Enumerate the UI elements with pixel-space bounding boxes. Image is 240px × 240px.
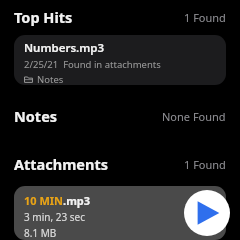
- staticText: 3 min, 23 sec: [24, 210, 85, 224]
- staticText: 10 MIN.mp3: [24, 193, 91, 208]
- staticText: Notes: [14, 106, 58, 126]
- staticText: 1 Found: [184, 10, 226, 25]
- staticText: None Found: [162, 109, 226, 124]
- staticText: Attachments: [14, 154, 109, 174]
- staticText: 2/25/21 Found in attachments: [24, 58, 161, 71]
- button[interactable]: Attachments: [14, 154, 226, 174]
- button[interactable]: Notes: [14, 106, 226, 126]
- staticText: Top Hits: [14, 7, 73, 27]
- button[interactable]: Play: [184, 190, 230, 236]
- staticText: 1 Found: [184, 157, 226, 172]
- staticText: Notes: [37, 73, 64, 85]
- staticText: Numbers.mp3: [24, 40, 105, 56]
- button[interactable]: 10 MIN.mp3: [14, 186, 226, 240]
- staticText: 8.1 MB: [24, 226, 57, 240]
- button[interactable]: Top Hits: [14, 7, 226, 27]
- button[interactable]: Numbers.mp3: [14, 35, 226, 85]
